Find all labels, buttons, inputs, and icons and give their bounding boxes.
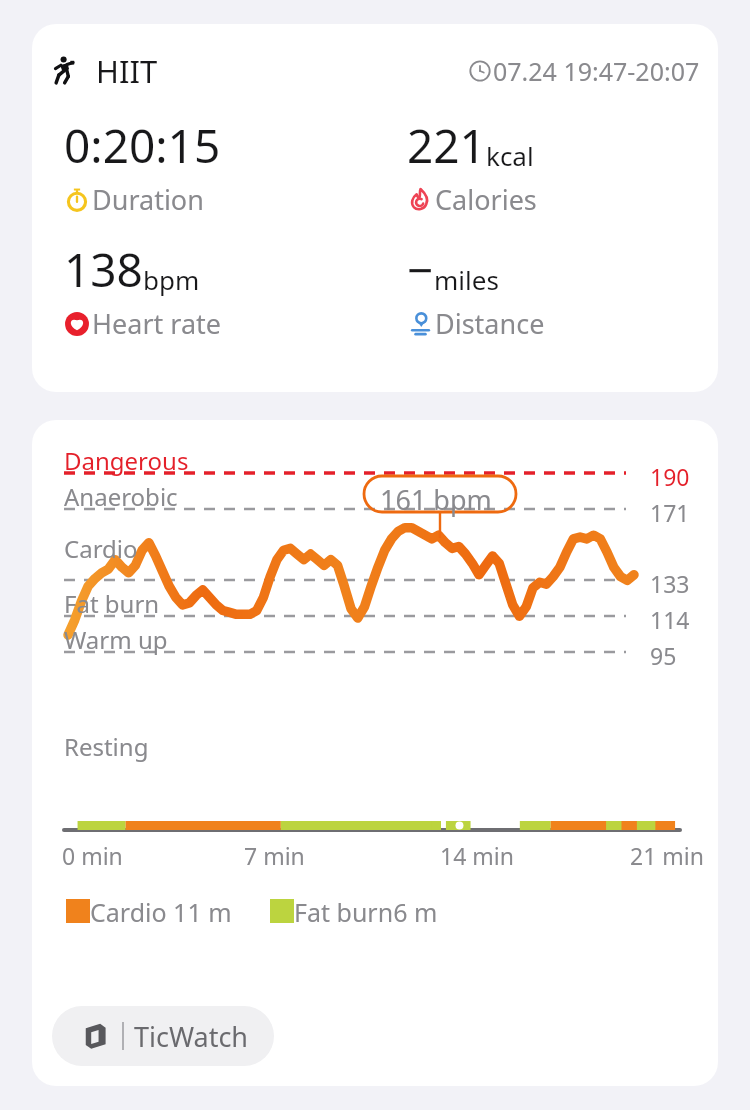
staticText: 21 min [630, 840, 704, 871]
staticText: 138 [64, 238, 143, 301]
staticText: Distance [435, 305, 545, 342]
staticText: Fat burn6 m [294, 895, 438, 929]
staticText: 161 bpm [380, 481, 492, 518]
staticText: 0:20:15 [64, 114, 221, 177]
staticText: miles [434, 262, 499, 297]
staticText: 133 [650, 568, 690, 599]
staticText: HIIT [96, 50, 158, 92]
staticText: 171 [650, 497, 690, 528]
button[interactable]: 221 [407, 114, 718, 218]
staticText: Resting [64, 730, 149, 763]
staticText: 0 min [62, 840, 123, 871]
staticText: 95 [650, 640, 677, 671]
button[interactable]: 138 [64, 238, 375, 342]
staticText: 7 min [244, 840, 305, 871]
button[interactable]: Workout type HIIT [32, 24, 718, 392]
staticText: 221 [407, 114, 486, 177]
staticText: TicWatch [134, 1018, 249, 1055]
staticText: 14 min [440, 840, 514, 871]
staticText: Cardio 11 m [90, 895, 232, 929]
staticText: Dangerous [64, 444, 189, 477]
staticText: Duration [92, 181, 204, 218]
staticText: Calories [435, 181, 537, 218]
staticText: Anaerobic [64, 480, 178, 513]
button[interactable]: − [407, 238, 718, 342]
other: Workout type HIIT [50, 54, 84, 88]
staticText: Heart rate [92, 305, 222, 342]
button[interactable]: TicWatch device [52, 1006, 274, 1066]
staticText: Cardio [64, 532, 138, 565]
staticText: 07.24 19:47-20:07 [493, 54, 700, 88]
staticText: Fat burn [64, 587, 160, 620]
staticText: − [407, 238, 434, 301]
staticText: 114 [650, 604, 690, 635]
button[interactable]: Dangerous [32, 420, 718, 1086]
staticText: Warm up [64, 623, 168, 656]
staticText: kcal [486, 138, 534, 173]
button[interactable]: 0:20:15 [64, 114, 375, 218]
staticText: bpm [143, 262, 200, 297]
staticText: 190 [650, 461, 690, 492]
